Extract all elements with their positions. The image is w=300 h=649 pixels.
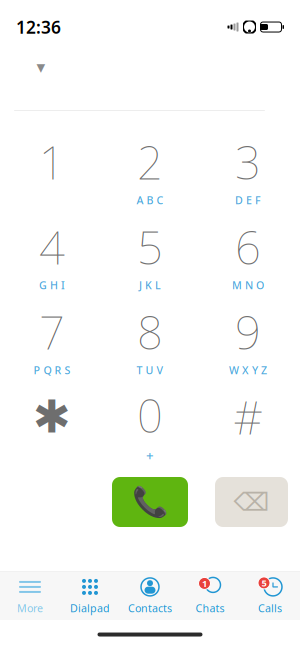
staticText: More <box>17 601 43 615</box>
staticText: 12:36 <box>16 15 61 38</box>
button[interactable]: 0 <box>101 382 199 467</box>
staticText: T U V <box>136 363 163 377</box>
staticText: # <box>233 387 262 447</box>
staticText: 7 <box>39 302 65 362</box>
button[interactable]: ✱ <box>3 382 101 467</box>
staticText: A B C <box>136 193 163 207</box>
button[interactable]: 1 <box>3 127 101 212</box>
staticText: Calls <box>258 601 282 615</box>
staticText: ⌫ <box>233 488 269 516</box>
staticText: 3 <box>235 132 261 192</box>
staticText: ✱ <box>33 391 71 443</box>
button[interactable]: 6 <box>199 212 297 297</box>
staticText: P Q R S <box>33 363 70 377</box>
button[interactable]: More <box>0 572 60 620</box>
button[interactable]: 3 <box>199 127 297 212</box>
button[interactable]: Contacts <box>120 572 180 620</box>
button[interactable]: 4 <box>3 212 101 297</box>
staticText: 0 <box>137 385 163 445</box>
staticText: + <box>146 446 154 464</box>
staticText: 5 <box>261 577 266 589</box>
staticText: 4 <box>39 217 65 277</box>
button[interactable]: # <box>199 382 297 467</box>
staticText: 1 <box>39 132 65 192</box>
button[interactable]: Call <box>112 477 188 527</box>
staticText: 9 <box>235 302 261 362</box>
button[interactable]: Country code <box>28 54 54 80</box>
button[interactable]: 8 <box>101 297 199 382</box>
staticText: Chats <box>195 601 224 615</box>
staticText: W X Y Z <box>229 363 267 377</box>
button[interactable]: 5 <box>101 212 199 297</box>
staticText: 6 <box>235 217 261 277</box>
staticText: ▾ <box>36 57 45 77</box>
staticText: G H I <box>39 278 65 292</box>
staticText: J K L <box>139 278 161 292</box>
button[interactable]: 2 <box>101 127 199 212</box>
staticText: 5 <box>137 217 163 277</box>
button[interactable]: 5 <box>240 572 300 620</box>
button[interactable]: 7 <box>3 297 101 382</box>
staticText: 1 <box>202 577 207 590</box>
button[interactable]: Delete <box>215 477 288 527</box>
staticText: 8 <box>137 302 163 362</box>
button[interactable]: 9 <box>199 297 297 382</box>
staticText: 2 <box>137 132 163 192</box>
staticText: M N O <box>232 278 264 292</box>
button[interactable]: 1 <box>180 572 240 620</box>
staticText: 📞 <box>131 485 168 519</box>
staticText: Contacts <box>128 601 172 615</box>
staticText: Dialpad <box>70 601 110 615</box>
staticText: D E F <box>235 193 261 207</box>
button[interactable]: Dialpad <box>60 572 120 620</box>
